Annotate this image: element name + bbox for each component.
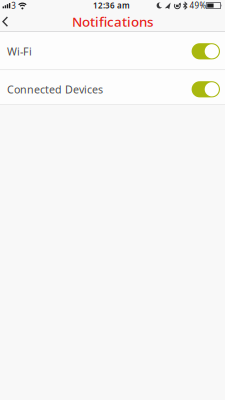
staticText: 3 bbox=[11, 0, 16, 11]
staticText: Wi-Fi bbox=[7, 44, 32, 58]
staticText: 12:36 am bbox=[93, 0, 130, 11]
button[interactable] bbox=[0, 12, 16, 31]
staticText: 49% bbox=[189, 0, 206, 11]
staticText: Connected Devices bbox=[7, 82, 103, 96]
staticText: Notifications bbox=[72, 13, 153, 30]
button[interactable] bbox=[192, 81, 220, 97]
button[interactable] bbox=[192, 43, 220, 59]
